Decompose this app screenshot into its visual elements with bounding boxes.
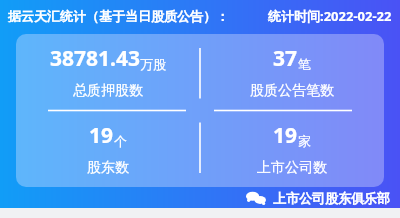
- staticText: 统计时间:2022-02-22: [268, 7, 392, 25]
- button[interactable]: WeChat: [246, 190, 390, 206]
- staticText: 总质押股数: [73, 82, 143, 100]
- button[interactable]: 19: [200, 111, 384, 187]
- button[interactable]: 19: [16, 111, 200, 187]
- staticText: 上市公司股东俱乐部: [273, 190, 390, 206]
- staticText: 笔: [298, 56, 311, 72]
- staticText: 38781.43: [50, 44, 140, 73]
- staticText: 股质公告笔数: [250, 82, 334, 100]
- staticText: 37: [273, 44, 298, 73]
- staticText: 19: [89, 121, 114, 150]
- staticText: 上市公司数: [257, 159, 327, 177]
- staticText: 家: [298, 133, 311, 149]
- staticText: 万股: [140, 56, 166, 72]
- button[interactable]: 38781.43: [16, 34, 200, 110]
- button[interactable]: 37: [200, 34, 384, 110]
- staticText: 19: [273, 121, 298, 150]
- staticText: 据云天汇统计（基于当日股质公告）：: [8, 8, 229, 24]
- staticText: 股东数: [87, 159, 129, 177]
- staticText: 个: [114, 133, 127, 149]
- other: WeChat: [246, 191, 266, 206]
